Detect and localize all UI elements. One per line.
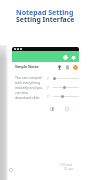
button[interactable]: [47, 94, 79, 99]
button[interactable]: Settings: [73, 65, 78, 70]
staticText: You can notepad with everything instantl…: [15, 75, 43, 100]
button[interactable]: Settings: [63, 55, 68, 60]
staticText: Simple Notes: [15, 64, 39, 69]
button[interactable]: [47, 85, 79, 90]
button[interactable]: [47, 76, 79, 81]
staticText: Setting Interface: [16, 15, 75, 24]
staticText: Notepad Setting: [16, 8, 74, 18]
button[interactable]: Delete: [65, 65, 70, 70]
button[interactable]: Voice note: [57, 65, 62, 70]
staticText: 116 view: [60, 163, 73, 167]
button[interactable]: Notifications: [71, 55, 76, 60]
staticText: 21 apr: [64, 167, 73, 171]
